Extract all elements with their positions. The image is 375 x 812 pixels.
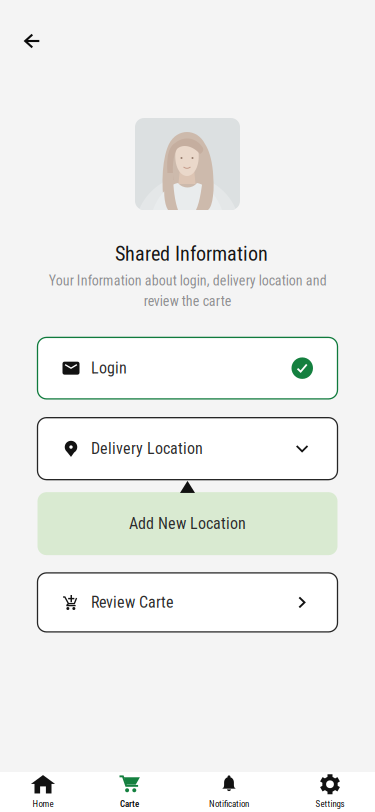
staticText: Login xyxy=(91,359,127,378)
button[interactable]: Settings xyxy=(285,772,375,812)
staticText: Notification xyxy=(209,799,249,809)
staticText: Your Information about login, delivery l… xyxy=(48,273,326,309)
staticText: Home xyxy=(32,799,53,809)
staticText: Delivery Location xyxy=(91,439,203,458)
button[interactable]: Home xyxy=(0,772,86,812)
button[interactable]: Back xyxy=(10,19,54,63)
staticText: Carte xyxy=(120,799,139,809)
staticText: Shared Information xyxy=(115,242,268,266)
button[interactable]: Notification xyxy=(173,772,285,812)
staticText: Review Carte xyxy=(91,593,174,612)
button[interactable]: Login xyxy=(37,337,337,399)
staticText: Settings xyxy=(315,799,344,809)
button[interactable]: Add New Location xyxy=(37,492,337,555)
button[interactable]: Review Carte xyxy=(37,573,337,632)
staticText: Add New Location xyxy=(129,514,246,533)
button[interactable]: Carte xyxy=(86,772,173,812)
button[interactable]: Delivery Location xyxy=(37,418,337,480)
